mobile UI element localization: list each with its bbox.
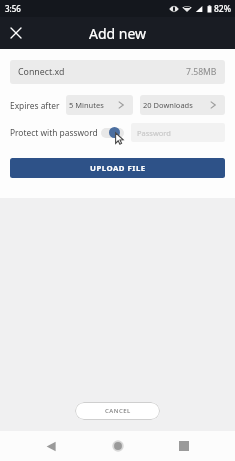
button[interactable]: CANCEL xyxy=(75,402,160,420)
staticText: Expires after xyxy=(10,100,60,111)
button[interactable]: Close xyxy=(4,21,28,45)
button[interactable]: Recents xyxy=(169,431,199,461)
staticText: Add new xyxy=(89,24,147,43)
button[interactable]: UPLOAD FILE xyxy=(10,158,225,178)
staticText: Connect.xd xyxy=(18,66,65,78)
staticText: UPLOAD FILE xyxy=(90,163,146,174)
staticText: Protect with password xyxy=(10,127,98,138)
staticText: CANCEL xyxy=(105,407,131,415)
button[interactable]: 20 Downloads xyxy=(140,95,225,115)
staticText: 3:56 xyxy=(5,3,21,14)
button[interactable]: Protect with password xyxy=(101,123,124,142)
button[interactable]: 5 Minutes xyxy=(66,95,133,115)
button[interactable]: Home xyxy=(103,431,133,461)
staticText: 20 Downloads xyxy=(143,100,193,110)
staticText: 7.58MB xyxy=(186,66,217,78)
button[interactable]: Password xyxy=(131,123,225,142)
button[interactable]: Back xyxy=(36,431,66,461)
staticText: Password xyxy=(137,128,171,138)
button[interactable]: Connect.xd xyxy=(10,60,225,84)
staticText: 5 Minutes xyxy=(69,100,104,110)
staticText: 82% xyxy=(214,3,231,15)
